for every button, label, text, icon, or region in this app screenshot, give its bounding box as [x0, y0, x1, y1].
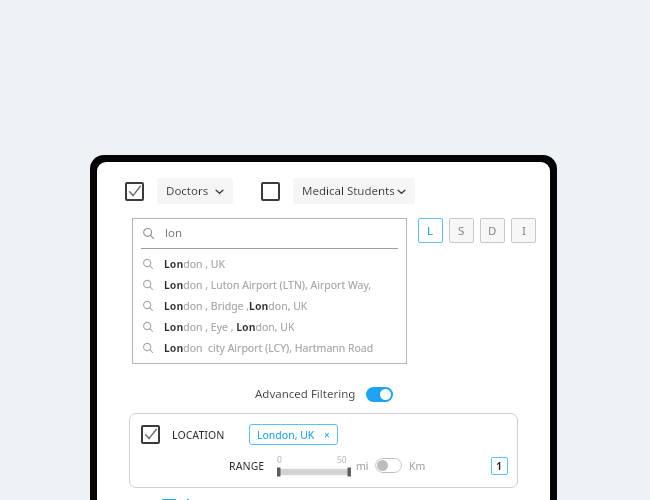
- button[interactable]: London city Airport (LCY), Hartmann Road: [132, 337, 407, 358]
- staticText: L: [427, 223, 434, 239]
- staticText: London , Bridge ,London, UK: [164, 299, 308, 313]
- staticText: lon: [165, 225, 183, 241]
- button[interactable]: London, UK: [249, 424, 338, 445]
- staticText: London, UK: [257, 428, 315, 442]
- staticText: I: [522, 223, 526, 239]
- staticText: Km: [409, 459, 426, 473]
- button[interactable]: Advanced Filtering toggle: [366, 387, 393, 402]
- button[interactable]: Medical Students checkbox: [261, 182, 280, 201]
- staticText: Medical Students: [302, 183, 395, 199]
- staticText: 0: [277, 454, 282, 466]
- button[interactable]: Location checkbox: [141, 425, 160, 444]
- staticText: ×: [324, 428, 330, 442]
- staticText: 1: [496, 459, 503, 473]
- button[interactable]: Medical Students: [293, 178, 415, 204]
- staticText: London , UK: [164, 257, 226, 271]
- button[interactable]: L: [418, 218, 443, 243]
- button[interactable]: London , Eye , London, UK: [132, 316, 407, 337]
- staticText: RANGE: [229, 459, 265, 473]
- button[interactable]: I: [511, 218, 536, 243]
- staticText: London city Airport (LCY), Hartmann Road: [164, 341, 374, 355]
- button[interactable]: S: [449, 218, 474, 243]
- button[interactable]: Doctors: [157, 178, 233, 204]
- staticText: London , Luton Airport (LTN), Airport Wa…: [164, 278, 372, 292]
- button[interactable]: London , Luton Airport (LTN), Airport Wa…: [132, 274, 407, 295]
- button[interactable]: Doctors checkbox: [125, 182, 144, 201]
- staticText: S: [458, 223, 465, 239]
- staticText: Doctors: [166, 183, 209, 199]
- button[interactable]: London , Bridge ,London, UK: [132, 295, 407, 316]
- staticText: D: [488, 223, 497, 239]
- button[interactable]: Range slider: [277, 467, 351, 477]
- button[interactable]: D: [480, 218, 505, 243]
- staticText: Advanced Filtering: [255, 386, 356, 402]
- staticText: LOCATION: [172, 428, 225, 442]
- staticText: 50: [337, 454, 347, 466]
- staticText: London , Eye , London, UK: [164, 320, 295, 334]
- staticText: mi: [356, 459, 369, 473]
- button[interactable]: Miles or kilometres toggle: [375, 458, 402, 473]
- button[interactable]: lon: [132, 218, 407, 248]
- button[interactable]: AND OR toggle: [162, 499, 189, 500]
- button[interactable]: London , UK: [132, 253, 407, 274]
- button[interactable]: 1: [491, 457, 508, 475]
